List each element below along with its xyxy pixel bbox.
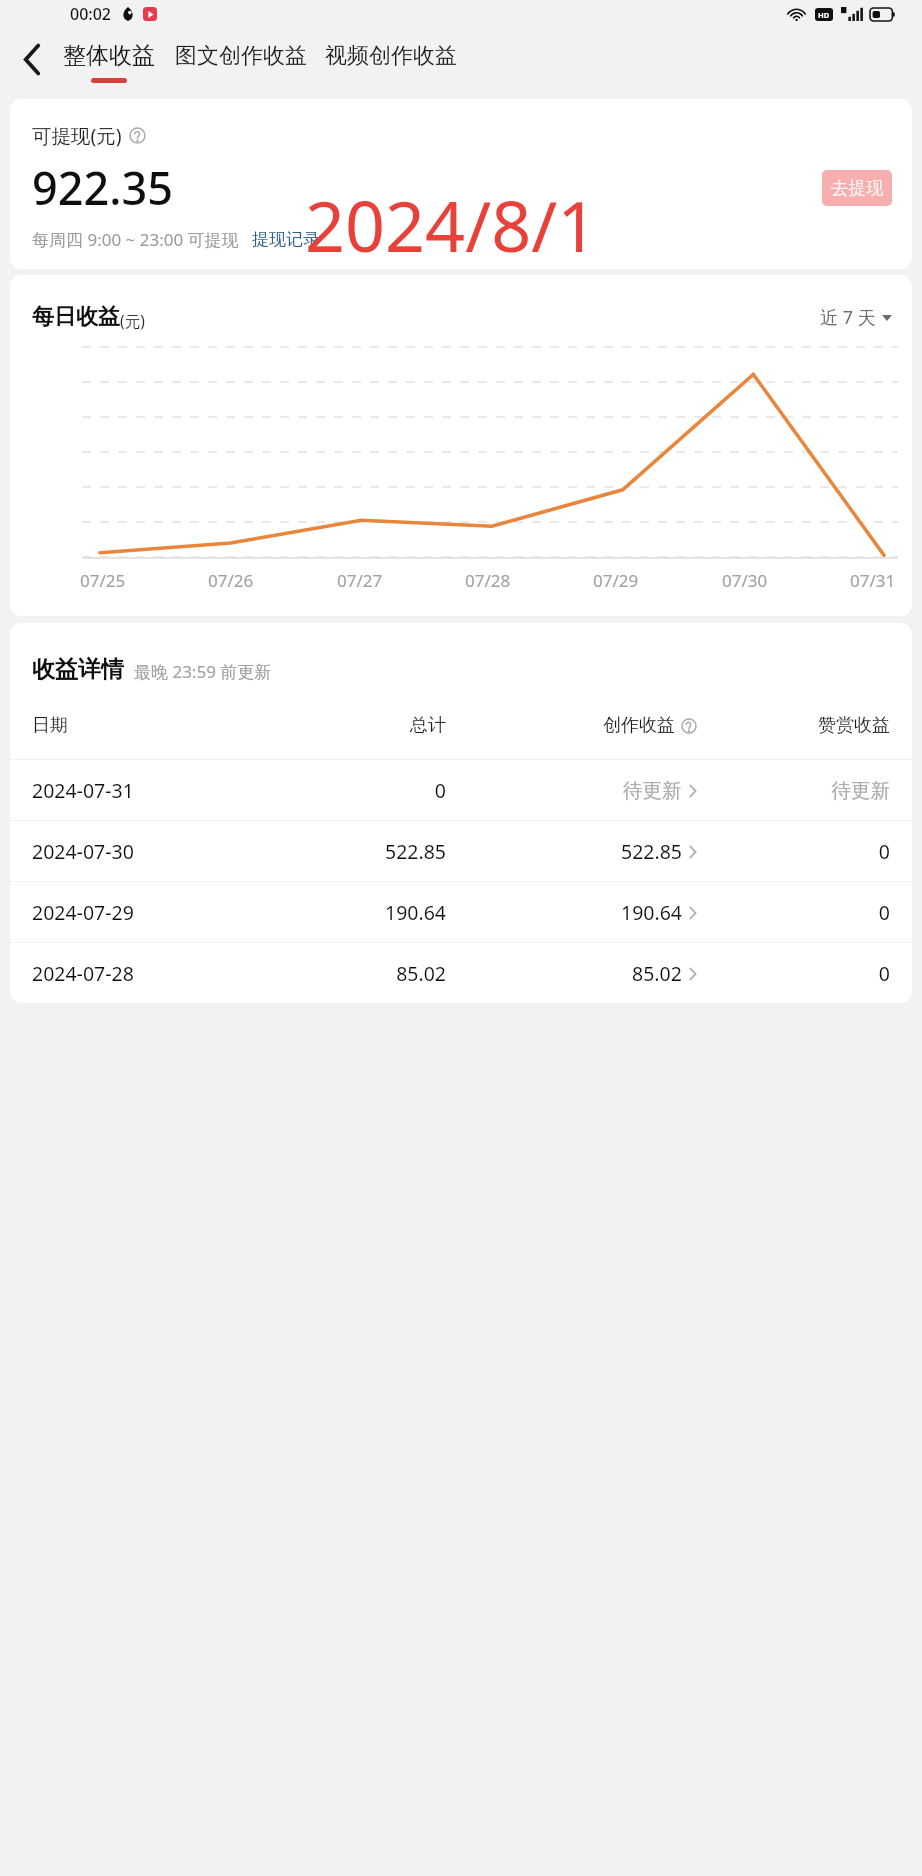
staticText: 07/31 [850,569,896,592]
staticText: 07/26 [208,569,254,592]
button[interactable]: 2024-07-29 [10,882,912,942]
staticText: 赞赏收益 [697,714,890,737]
staticText: 可提现(元) [32,122,122,149]
staticText: 每日收益 [32,303,120,331]
staticText: 2024-07-29 [32,899,263,926]
staticText: (元) [120,310,145,331]
staticText: 最晚 23:59 前更新 [134,660,272,683]
staticText: 07/28 [465,569,511,592]
staticText: 07/27 [337,569,383,592]
staticText: 去提现 [831,177,884,199]
button[interactable]: 2024-07-30 [10,821,912,881]
staticText: 待更新 [623,778,682,803]
staticText: 2024/8/1 [305,177,598,272]
staticText: 522.85 [621,838,682,865]
staticText: 522.85 [263,838,446,865]
button[interactable]: 2024-07-31 [10,760,912,820]
staticText: 85.02 [632,960,682,987]
button[interactable]: 图文创作收益 [175,28,307,91]
staticText: 0 [697,838,890,865]
staticText: 提现记录 [252,229,320,250]
staticText: 待更新 [697,778,890,803]
staticText: 85.02 [263,960,446,987]
staticText: 07/29 [593,569,639,592]
staticText: 922.35 [32,157,173,218]
staticText: 2024-07-28 [32,960,263,987]
staticText: HD [818,10,830,20]
button[interactable]: 近 7 天 [820,305,892,330]
staticText: 收益详情 [32,655,124,684]
staticText: 190.64 [621,899,682,926]
staticText: 07/30 [722,569,768,592]
staticText: 190.64 [263,899,446,926]
staticText: 每周四 9:00 ~ 23:00 可提现 [32,228,239,251]
staticText: 视频创作收益 [325,42,457,70]
staticText: 近 7 天 [820,305,876,330]
staticText: 日期 [32,714,263,737]
button[interactable]: 2024-07-28 [10,943,912,1003]
button[interactable]: 整体收益 [63,28,155,91]
staticText: 整体收益 [63,41,155,70]
button[interactable]: 提现记录 [252,229,320,250]
staticText: 2024-07-31 [32,777,263,804]
staticText: 07/25 [80,569,126,592]
staticText: 00:02 [70,3,111,25]
staticText: 图文创作收益 [175,42,307,70]
button[interactable]: 去提现 [822,170,892,206]
staticText: 2024-07-30 [32,838,263,865]
staticText: 总计 [263,714,446,737]
button[interactable]: Back [0,28,63,91]
staticText: 创作收益 [603,714,675,737]
staticText: 0 [697,899,890,926]
staticText: 0 [697,960,890,987]
button[interactable]: 视频创作收益 [325,28,457,91]
staticText: 0 [263,777,446,804]
